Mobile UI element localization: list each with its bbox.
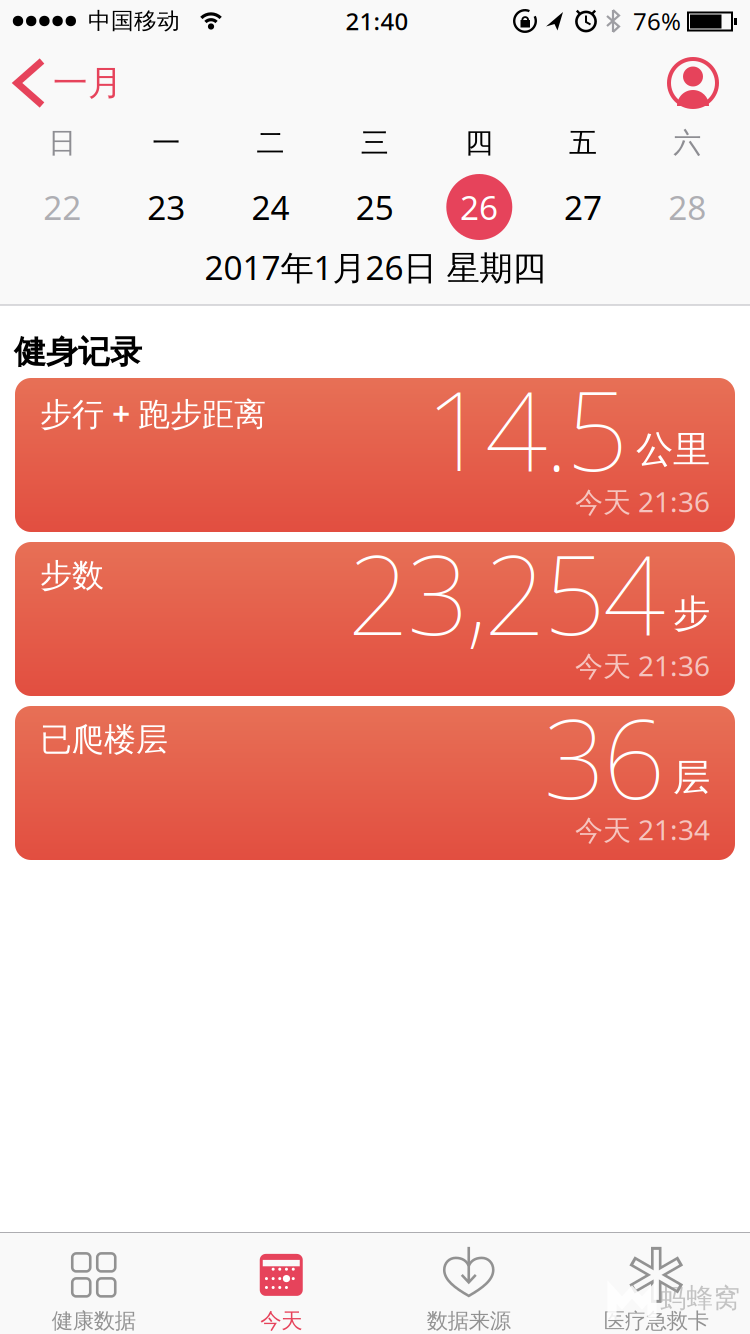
staticText: 六 bbox=[673, 126, 701, 160]
staticText: 五 bbox=[569, 126, 597, 160]
staticText: 22 bbox=[43, 185, 81, 229]
staticText: 76% bbox=[633, 5, 681, 37]
staticText: 步 bbox=[673, 591, 710, 637]
staticText: 数据来源 bbox=[427, 1308, 511, 1334]
button[interactable]: 25 bbox=[325, 174, 425, 240]
staticText: 医疗急救卡 bbox=[604, 1308, 709, 1334]
button[interactable]: 26 bbox=[429, 174, 529, 240]
staticText: 24 bbox=[251, 185, 289, 229]
staticText: 蚂蜂窝 bbox=[659, 1282, 740, 1314]
button[interactable]: 步数 bbox=[15, 542, 735, 696]
button[interactable]: 今天 bbox=[187, 1243, 375, 1334]
staticText: 三 bbox=[361, 126, 389, 160]
button[interactable]: 健康数据 bbox=[0, 1243, 187, 1334]
button[interactable]: 已爬楼层 bbox=[15, 706, 735, 860]
staticText: 36 bbox=[543, 684, 665, 829]
staticText: 健康数据 bbox=[52, 1308, 136, 1334]
staticText: 中国移动 bbox=[88, 7, 180, 35]
staticText: 日 bbox=[48, 126, 76, 160]
staticText: 23 bbox=[147, 185, 185, 229]
staticText: 步行 + 跑步距离 bbox=[40, 392, 266, 434]
button[interactable]: 23 bbox=[116, 174, 216, 240]
button[interactable]: 数据来源 bbox=[375, 1243, 562, 1334]
button[interactable]: 步行 + 跑步距离 bbox=[15, 378, 735, 532]
staticText: 二 bbox=[256, 126, 284, 160]
staticText: 今天 21:36 bbox=[575, 483, 710, 520]
staticText: 健身记录 bbox=[14, 332, 142, 372]
staticText: 今天 21:36 bbox=[575, 647, 710, 684]
staticText: 21:40 bbox=[345, 5, 408, 37]
button[interactable]: 22 bbox=[12, 174, 112, 240]
staticText: 25 bbox=[356, 185, 394, 229]
staticText: 23,254 bbox=[347, 520, 665, 665]
button[interactable]: 返回 一月 bbox=[15, 59, 135, 107]
staticText: 今天 bbox=[260, 1308, 302, 1334]
staticText: 今天 21:34 bbox=[575, 811, 710, 848]
staticText: 27 bbox=[564, 185, 602, 229]
staticText: 2017年1月26日 星期四 bbox=[204, 245, 545, 289]
button[interactable]: 健康资料 bbox=[666, 56, 720, 110]
staticText: 公里 bbox=[636, 427, 710, 473]
staticText: 四 bbox=[465, 126, 493, 160]
staticText: 14.5 bbox=[425, 356, 628, 501]
staticText: 一 bbox=[152, 126, 180, 160]
button[interactable]: 24 bbox=[220, 174, 320, 240]
staticText: 28 bbox=[668, 185, 706, 229]
button[interactable]: 28 bbox=[637, 174, 737, 240]
staticText: 步数 bbox=[40, 556, 104, 595]
staticText: 层 bbox=[673, 755, 710, 801]
staticText: 已爬楼层 bbox=[40, 720, 168, 759]
button[interactable]: 27 bbox=[533, 174, 633, 240]
button[interactable]: 医疗急救卡 bbox=[562, 1243, 750, 1334]
staticText: 26 bbox=[460, 185, 498, 229]
staticText: 一月 bbox=[53, 62, 123, 104]
